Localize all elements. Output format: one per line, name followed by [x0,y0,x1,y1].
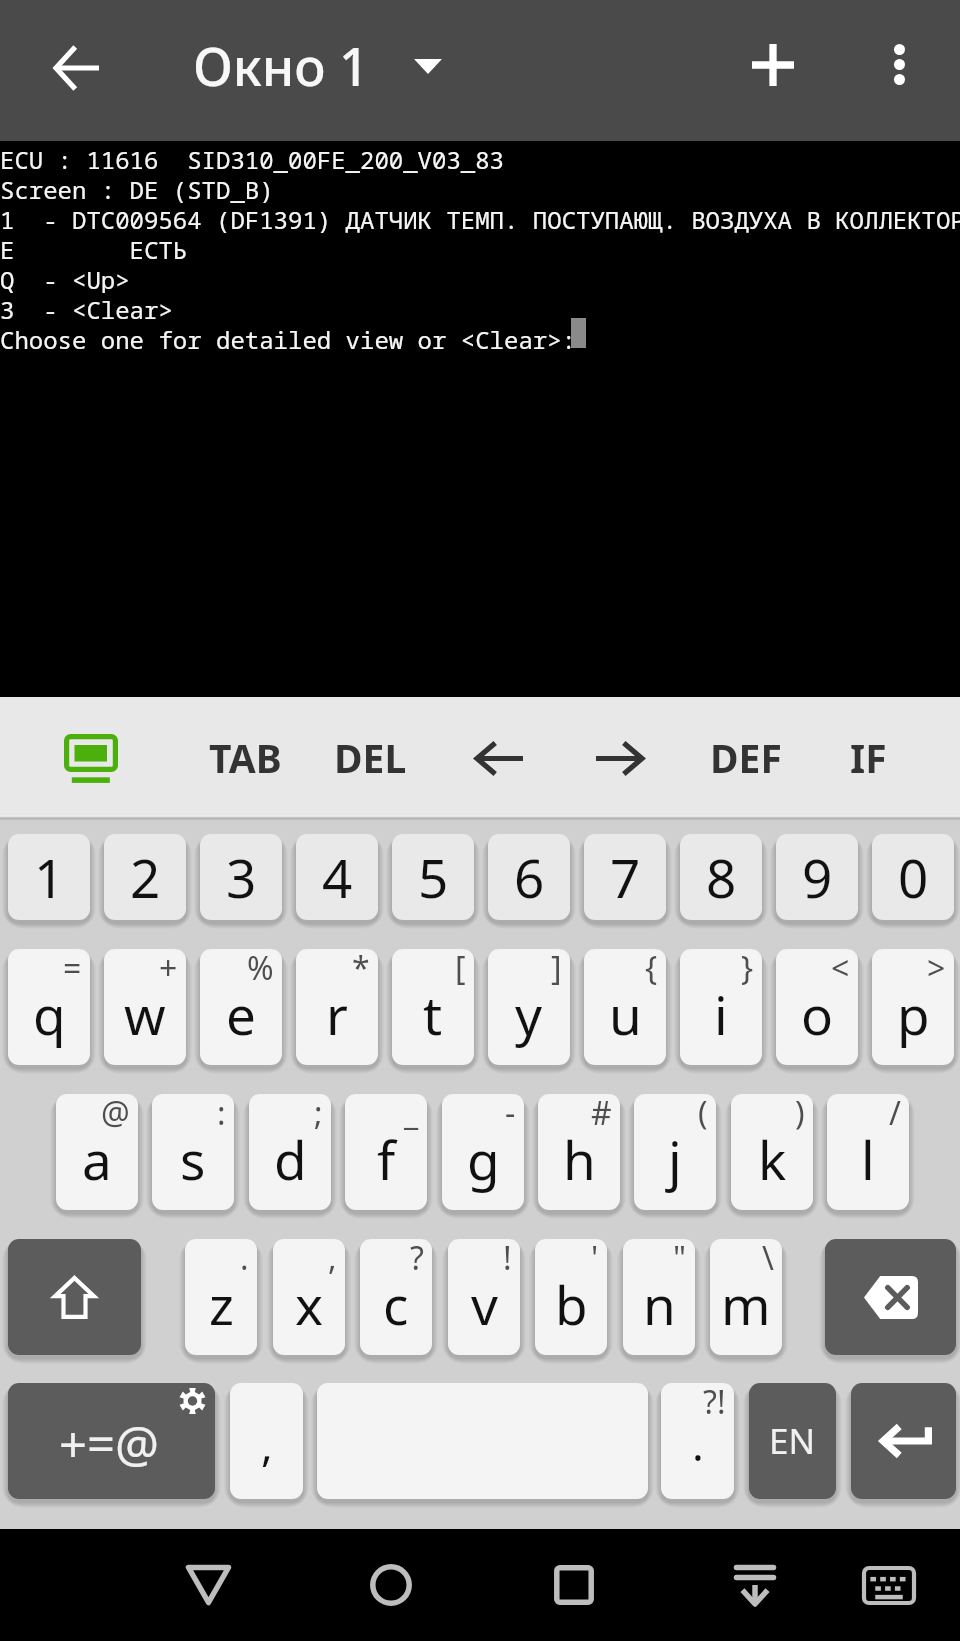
staticText: ' [591,1239,599,1280]
button[interactable]: 3 [200,834,282,920]
button[interactable]: { [584,949,666,1065]
button[interactable]: ( [634,1094,716,1210]
button[interactable]: \ [710,1239,782,1355]
button[interactable]: Hide keyboard [707,1538,803,1632]
staticText: u [609,978,642,1050]
button[interactable]: @ [56,1094,138,1210]
button[interactable]: 0 [872,834,954,920]
button[interactable]: ' [535,1239,607,1355]
staticText: x [295,1268,324,1340]
button[interactable]: = [8,949,90,1065]
button[interactable]: , [230,1383,303,1499]
button[interactable]: ] [488,949,570,1065]
staticText: TAB [209,731,282,784]
staticText: ? [410,1239,424,1280]
button[interactable]: Backspace [825,1239,956,1355]
button[interactable]: Back [160,1538,256,1632]
staticText: IF [850,731,887,784]
staticText: [ [455,949,466,990]
staticText: " [673,1239,687,1280]
button[interactable]: _ [345,1094,427,1210]
staticText: + [159,949,178,990]
button[interactable]: , [273,1239,345,1355]
button[interactable]: ?! [661,1383,734,1499]
button[interactable]: 4 [296,834,378,920]
button[interactable]: # [538,1094,620,1210]
staticText: Окно 1 [193,30,369,101]
staticText: @ [101,1094,130,1135]
button[interactable]: DEF [694,709,797,806]
button[interactable]: ; [249,1094,331,1210]
button[interactable]: Switch keyboard [841,1538,937,1632]
button[interactable]: " [623,1239,695,1355]
staticText: 4 [322,841,353,913]
button[interactable]: New window [726,18,819,111]
button[interactable]: Symbols [8,1383,215,1499]
staticText: _ [404,1094,419,1135]
button[interactable]: Left [454,712,546,804]
button[interactable]: ) [731,1094,813,1210]
staticText: b [555,1268,588,1340]
staticText: q [33,978,66,1050]
button[interactable]: Back [30,21,123,114]
staticText: Q - <Up> [0,263,130,293]
button[interactable]: Right [573,712,665,804]
button[interactable]: 9 [776,834,858,920]
button[interactable]: Home [343,1538,439,1632]
staticText: DEL [334,731,407,784]
button[interactable]: 7 [584,834,666,920]
staticText: m [721,1268,771,1340]
staticText: a [82,1123,112,1195]
button[interactable]: } [680,949,762,1065]
staticText: 2 [130,841,161,913]
button[interactable]: > [872,949,954,1065]
button[interactable]: DEL [322,709,419,806]
button[interactable]: < [776,949,858,1065]
button[interactable]: . [185,1239,257,1355]
staticText: +=@ [59,1410,160,1477]
button[interactable]: Toggle terminal [45,712,137,804]
staticText: ; [314,1094,323,1135]
button[interactable]: + [104,949,186,1065]
staticText: p [897,978,930,1050]
button[interactable]: 2 [104,834,186,920]
button[interactable]: * [296,949,378,1065]
staticText: r [326,978,348,1050]
staticText: g [467,1123,500,1195]
staticText: . [692,1414,704,1474]
staticText: 0 [898,841,929,913]
button[interactable]: ! [448,1239,520,1355]
staticText: Screen : DE (STD_B) [0,173,274,203]
staticText: 7 [610,841,641,913]
staticText: ?! [703,1383,726,1424]
staticText: / [889,1094,901,1135]
button[interactable]: Shift [8,1239,141,1355]
button[interactable]: ? [360,1239,432,1355]
staticText: w [124,978,166,1050]
staticText: 1 [34,841,65,913]
button[interactable]: - [442,1094,524,1210]
staticText: - [505,1094,516,1135]
button[interactable]: [ [392,949,474,1065]
staticText: EN [769,1417,816,1465]
button[interactable]: 6 [488,834,570,920]
button[interactable]: Recents [526,1538,622,1632]
staticText: 6 [514,841,545,913]
button[interactable]: Language [749,1383,836,1499]
button[interactable]: More options [853,18,946,111]
staticText: 5 [418,841,449,913]
button[interactable]: % [200,949,282,1065]
button[interactable]: Окно 1 [170,14,455,126]
button[interactable]: 1 [8,834,90,920]
staticText: s [180,1123,206,1195]
button[interactable]: Enter [851,1383,956,1499]
button[interactable]: TAB [193,709,297,806]
button[interactable]: : [152,1094,234,1210]
button[interactable]: / [827,1094,909,1210]
staticText: o [801,978,834,1050]
button[interactable]: 5 [392,834,474,920]
button[interactable]: 8 [680,834,762,920]
button[interactable]: IF [838,709,899,806]
staticText: ! [503,1239,512,1280]
